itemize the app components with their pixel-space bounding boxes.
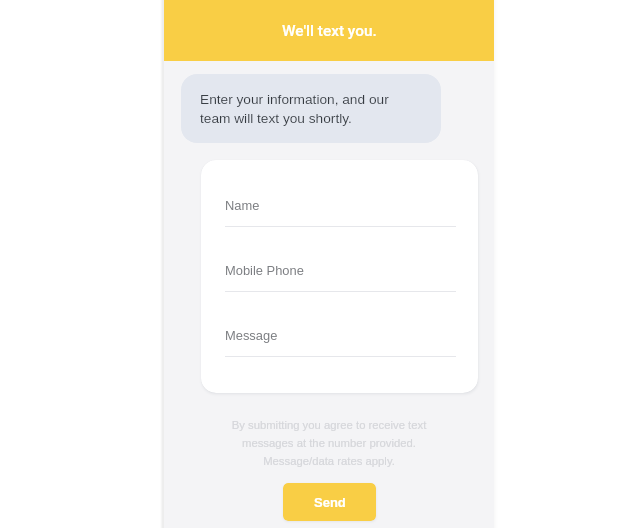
staticText: Send xyxy=(314,495,346,510)
staticText: Name xyxy=(225,198,260,212)
button[interactable]: Send xyxy=(283,483,376,521)
staticText: By submitting you agree to receive text … xyxy=(164,419,494,468)
staticText: Message xyxy=(225,328,278,342)
button[interactable]: Mobile Phone xyxy=(225,257,456,298)
staticText: We'll text you. xyxy=(282,22,377,40)
staticText: Enter your information, and our team wil… xyxy=(200,92,389,126)
button[interactable]: Message xyxy=(225,322,456,363)
staticText: Mobile Phone xyxy=(225,263,304,277)
button[interactable]: Name xyxy=(225,192,456,233)
